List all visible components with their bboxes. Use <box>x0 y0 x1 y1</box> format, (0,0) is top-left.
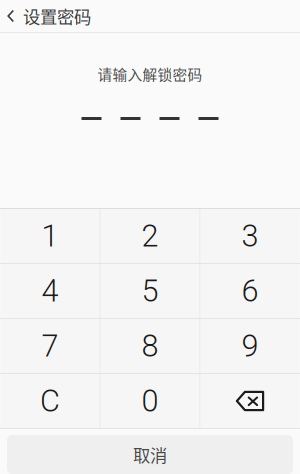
staticText: 6 <box>241 273 258 309</box>
button[interactable]: 1 <box>0 209 99 263</box>
staticText: C <box>40 383 60 419</box>
staticText: 7 <box>41 328 58 364</box>
button[interactable]: 9 <box>200 319 299 373</box>
staticText: 取消 <box>133 442 167 467</box>
staticText: 4 <box>41 273 58 309</box>
button[interactable]: 4 <box>0 264 99 318</box>
button[interactable]: 8 <box>100 319 199 373</box>
button[interactable]: 7 <box>0 319 99 373</box>
button[interactable]: 3 <box>200 209 299 263</box>
staticText: 0 <box>141 383 158 419</box>
button[interactable]: 取消 <box>7 435 293 474</box>
button[interactable]: 2 <box>100 209 199 263</box>
staticText: 8 <box>141 328 158 364</box>
staticText: 3 <box>241 218 258 254</box>
button[interactable]: 6 <box>200 264 299 318</box>
button[interactable]: 设置密码 <box>0 0 300 32</box>
button[interactable]: Delete <box>200 374 299 428</box>
staticText: 1 <box>41 218 58 254</box>
button[interactable]: 0 <box>100 374 199 428</box>
staticText: 2 <box>141 218 158 254</box>
staticText: 请输入解锁密码 <box>97 63 202 85</box>
staticText: 5 <box>141 273 158 309</box>
button[interactable]: 5 <box>100 264 199 318</box>
staticText: 9 <box>241 328 258 364</box>
button[interactable]: C <box>0 374 99 428</box>
staticText: 设置密码 <box>23 3 91 29</box>
